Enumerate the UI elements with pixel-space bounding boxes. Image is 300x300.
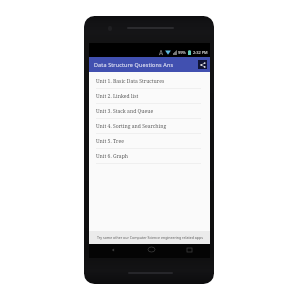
staticText: Unit 2. Linked list	[96, 93, 139, 100]
button[interactable]: Back	[108, 245, 117, 254]
button[interactable]: Recent apps	[185, 245, 194, 254]
button[interactable]: Unit 5. Tree	[89, 134, 210, 149]
button[interactable]: Unit 6. Graph	[89, 149, 210, 164]
staticText: Unit 3. Stack and Queue	[96, 108, 154, 115]
button[interactable]: Share	[198, 60, 207, 69]
staticText: Unit 6. Graph	[96, 153, 128, 160]
staticText: Try some other our Computer Science engi…	[97, 235, 203, 240]
button[interactable]: Unit 4. Sorting and Searching	[89, 119, 210, 134]
staticText: Unit 5. Tree	[96, 138, 124, 145]
button[interactable]: Home	[147, 245, 156, 254]
staticText: Unit 4. Sorting and Searching	[96, 123, 167, 130]
staticText: 2:32 PM	[193, 50, 208, 55]
button[interactable]: Try some other our Computer Science engi…	[89, 231, 210, 244]
button[interactable]: Unit 3. Stack and Queue	[89, 104, 210, 119]
staticText: Unit 1. Basic Data Structures	[96, 78, 165, 85]
staticText: 99%	[178, 50, 186, 55]
staticText: Data Structure Questions Ans	[94, 61, 174, 68]
button[interactable]: Unit 2. Linked list	[89, 89, 210, 104]
button[interactable]: Unit 1. Basic Data Structures	[89, 74, 210, 89]
